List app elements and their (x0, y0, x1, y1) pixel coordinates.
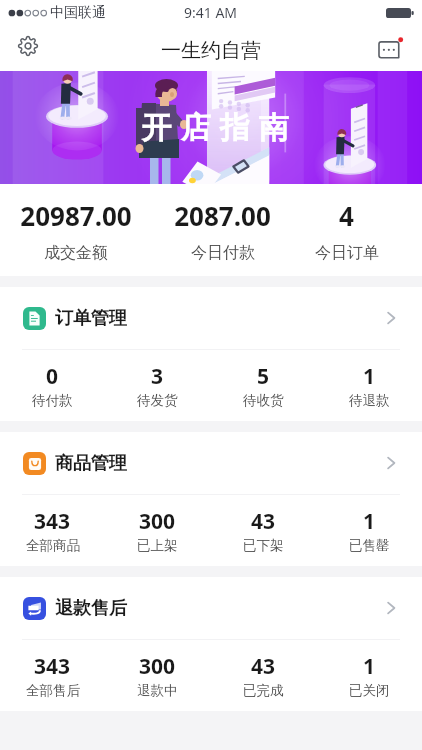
button[interactable]: 开店指南 (0, 71, 422, 184)
button[interactable]: 商品管理 (0, 432, 422, 494)
button[interactable]: 退款售后 (0, 577, 422, 639)
staticText: 退款售后 (55, 597, 127, 620)
button[interactable]: 4 (279, 198, 414, 263)
staticText: 343 (34, 652, 71, 681)
staticText: 已上架 (137, 537, 178, 554)
button[interactable]: 343 (0, 495, 105, 566)
staticText: 已下架 (243, 537, 284, 554)
button[interactable]: 2087.00 (144, 198, 279, 263)
staticText: 1 (363, 362, 376, 391)
staticText: 今日付款 (191, 243, 255, 263)
button[interactable]: 343 (0, 640, 105, 711)
button[interactable]: 300 (105, 495, 210, 566)
staticText: 43 (251, 507, 276, 536)
staticText: 待退款 (349, 392, 390, 409)
button[interactable]: 1 (316, 350, 422, 421)
staticText: 今日订单 (315, 243, 379, 263)
staticText: 300 (139, 507, 176, 536)
staticText: 1 (363, 652, 376, 681)
staticText: 商品管理 (55, 452, 127, 475)
staticText: 1 (363, 507, 376, 536)
staticText: 343 (34, 507, 71, 536)
staticText: 退款中 (137, 682, 178, 699)
staticText: 4 (339, 198, 354, 233)
staticText: 43 (251, 652, 276, 681)
staticText: 9:41 AM (184, 3, 238, 22)
button[interactable]: 0 (0, 350, 105, 421)
staticText: 开店指南 (137, 109, 293, 147)
staticText: 5 (257, 362, 270, 391)
button[interactable]: 5 (210, 350, 316, 421)
staticText: 已完成 (243, 682, 284, 699)
button[interactable]: 43 (210, 495, 316, 566)
staticText: 订单管理 (55, 307, 127, 330)
staticText: 全部售后 (26, 682, 80, 699)
button[interactable]: 订单管理 (0, 287, 422, 349)
staticText: 待收货 (243, 392, 284, 409)
button[interactable]: 1 (316, 640, 422, 711)
staticText: 待付款 (32, 392, 73, 409)
button[interactable]: Messages (371, 30, 407, 66)
staticText: 待发货 (137, 392, 178, 409)
button[interactable]: 43 (210, 640, 316, 711)
staticText: 已售罄 (349, 537, 390, 554)
staticText: 一生约自营 (161, 38, 261, 63)
staticText: 全部商品 (26, 537, 80, 554)
staticText: 3 (151, 362, 164, 391)
staticText: 中国联通 (50, 4, 106, 22)
staticText: 成交金额 (44, 243, 108, 263)
staticText: 已关闭 (349, 682, 390, 699)
staticText: 20987.00 (20, 198, 132, 233)
staticText: 300 (139, 652, 176, 681)
button[interactable]: 20987.00 (8, 198, 144, 263)
staticText: 0 (46, 362, 59, 391)
staticText: 2087.00 (174, 198, 271, 233)
button[interactable]: 300 (105, 640, 210, 711)
button[interactable]: 1 (316, 495, 422, 566)
button[interactable]: Settings (10, 28, 46, 64)
button[interactable]: 3 (105, 350, 210, 421)
